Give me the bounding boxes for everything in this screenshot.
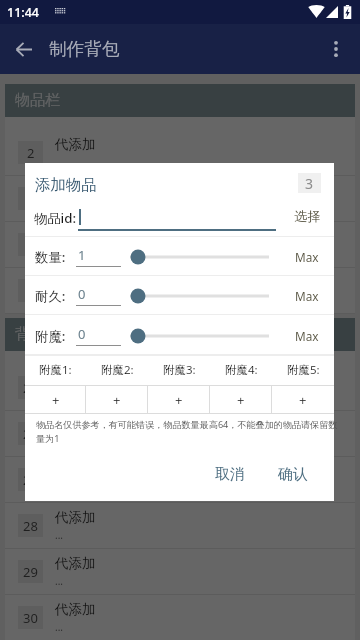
staticText: 数量: [35,248,66,266]
button[interactable]: 27 [5,457,355,503]
staticText: 11:44 [7,4,40,21]
button[interactable]: Max [287,324,327,348]
staticText: 代添加 [55,182,96,199]
button[interactable]: Add enchantment 5 [272,385,334,414]
staticText: 27 [23,471,38,489]
button[interactable]: 附魔: slider [125,321,273,351]
button[interactable]: 26 [5,411,355,457]
staticText: 选择 [294,208,321,225]
button[interactable]: Back [2,27,46,71]
staticText: ... [55,201,64,215]
button[interactable]: More options [314,27,358,71]
staticText: 物品栏 [15,91,60,110]
staticText: ... [55,293,64,307]
staticText: 代添加 [55,136,96,153]
staticText: 4 [27,236,35,254]
button[interactable]: Item count 3 [298,173,321,193]
staticText: 添加物品 [35,175,97,194]
staticText: ... [55,436,64,450]
staticText: 0 [78,325,86,343]
staticText: 附魔4: [225,362,258,378]
staticText: 附魔5: [287,362,320,378]
staticText: + [175,391,183,409]
staticText: 附魔3: [163,362,196,378]
staticText: 代添加 [55,371,96,388]
staticText: + [52,391,60,409]
staticText: 附魔1: [39,362,72,378]
staticText: + [237,391,245,409]
staticText: + [299,391,307,409]
staticText: ... [55,574,64,588]
staticText: 物品id: [34,209,77,227]
button[interactable]: 29 [5,549,355,595]
staticText: Max [295,249,319,265]
button[interactable]: Add enchantment 4 [210,385,272,414]
staticText: ... [55,247,64,261]
button[interactable]: 确认 [269,458,317,490]
button[interactable]: Add enchantment 2 [86,385,148,414]
staticText: 代添加 [55,509,96,526]
staticText: ... [55,155,64,169]
button[interactable]: 5 [5,268,355,314]
staticText: ... [55,620,64,634]
button[interactable]: 背包 [5,318,355,351]
staticText: 制作背包 [49,38,120,60]
staticText: 1 [78,246,86,264]
staticText: 代添加 [55,228,96,245]
button[interactable]: Add enchantment 3 [148,385,210,414]
staticText: 2 [27,144,35,162]
staticText: 物品名仅供参考，有可能错误，物品数量最高64，不能叠加的物品请保留数量为1 [36,418,338,445]
staticText: 代添加 [55,417,96,434]
button[interactable]: Max [287,245,327,269]
staticText: 25 [23,379,38,397]
button[interactable]: 28 [5,503,355,549]
staticText: 背包 [15,325,45,344]
staticText: 取消 [215,465,245,484]
button[interactable]: 数量: slider [125,242,273,272]
button[interactable]: Add enchantment 1 [25,385,86,414]
button[interactable]: Max [287,284,327,308]
staticText: 代添加 [55,601,96,618]
button[interactable]: 物品栏 [5,84,355,117]
button[interactable]: 取消 [206,458,254,490]
staticText: 29 [23,563,38,581]
staticText: 代添加 [55,274,96,291]
button[interactable]: 4 [5,222,355,268]
button[interactable]: 2 [5,130,355,176]
staticText: + [113,391,121,409]
staticText: 0 [78,285,86,303]
staticText: 附魔2: [101,362,134,378]
staticText: Max [295,328,319,344]
button[interactable]: 选择 [287,205,327,227]
staticText: 28 [23,517,38,535]
staticText: 耐久: [35,287,66,305]
staticText: 代添加 [55,555,96,572]
button[interactable]: 耐久: slider [125,281,273,311]
button[interactable]: 3 [5,176,355,222]
staticText: 3 [305,174,314,193]
staticText: 26 [23,425,38,443]
button[interactable]: 30 [5,595,355,640]
staticText: 确认 [278,465,308,484]
staticText: ... [55,390,64,404]
staticText: 30 [23,609,38,627]
staticText: 附魔: [35,327,66,345]
staticText: ... [55,528,64,542]
button[interactable]: 25 [5,365,355,411]
staticText: Max [295,288,319,304]
